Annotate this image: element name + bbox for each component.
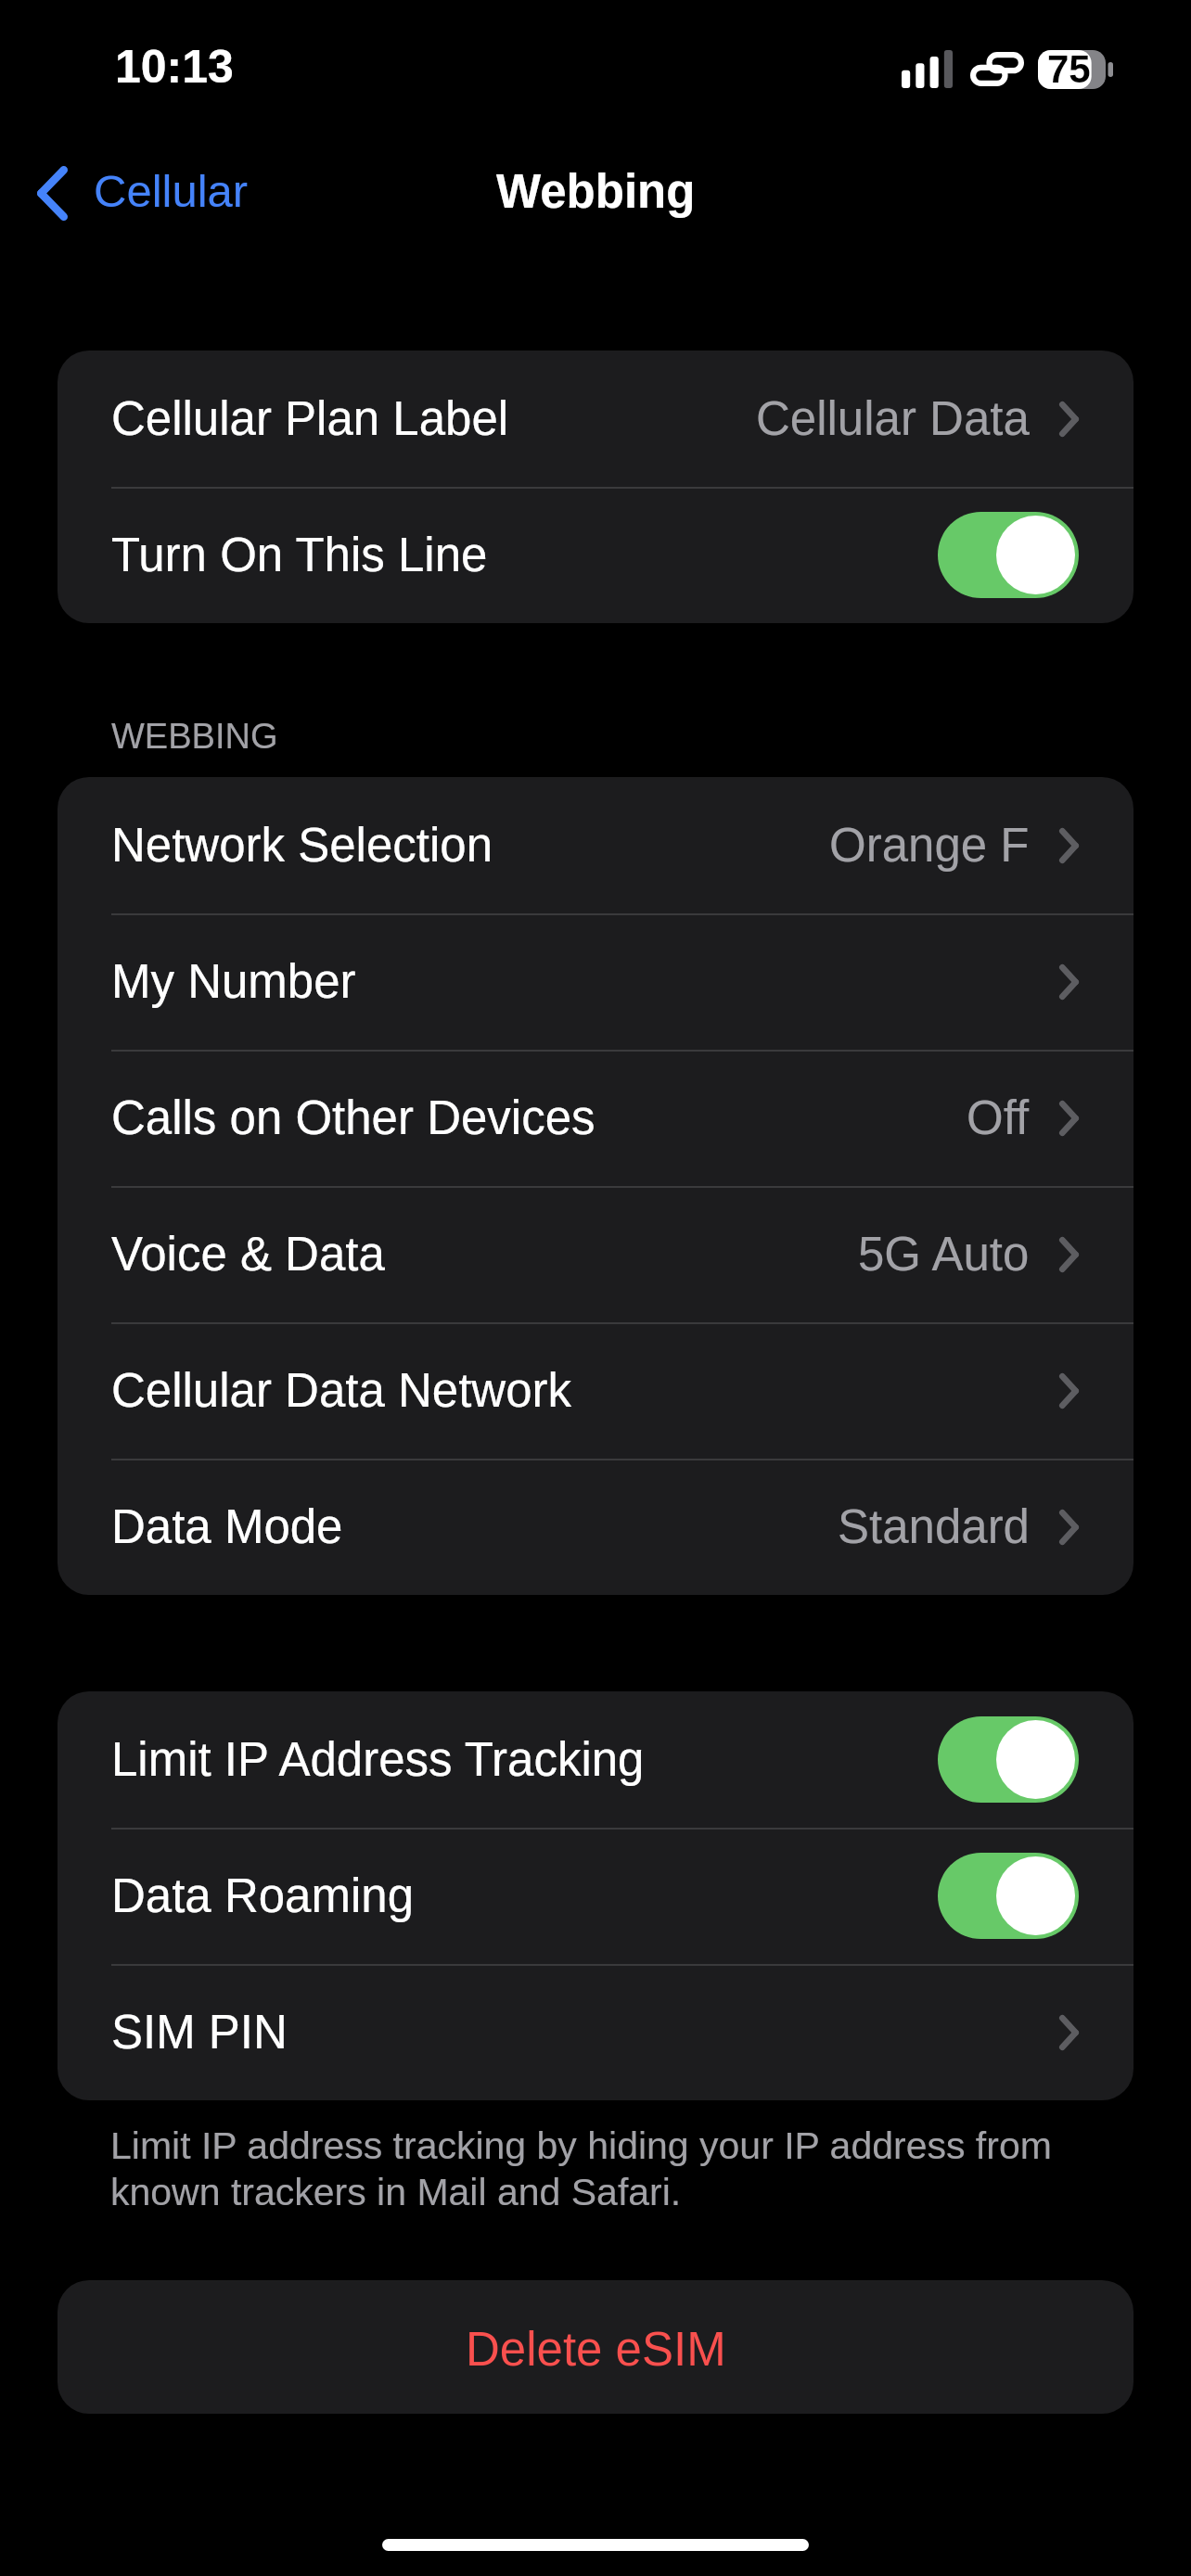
staticText: Data Mode [111, 1500, 343, 1553]
button[interactable]: Data Mode [58, 1459, 1133, 1595]
button[interactable]: Delete eSIM [58, 2280, 1133, 2414]
staticText: Delete eSIM [466, 2323, 726, 2376]
button[interactable]: Turn On This Line [938, 512, 1079, 598]
staticText: 5G Auto [858, 1228, 1030, 1281]
staticText: Cellular Data Network [111, 1364, 572, 1417]
button[interactable]: Limit IP Address Tracking [58, 1691, 1133, 1828]
button[interactable]: Turn On This Line [58, 487, 1133, 623]
button[interactable]: Network Selection [58, 777, 1133, 913]
button[interactable]: Data Roaming [938, 1853, 1079, 1939]
staticText: Cellular [94, 166, 249, 217]
staticText: Orange F [829, 819, 1030, 872]
button[interactable]: Voice & Data [58, 1186, 1133, 1322]
staticText: Cellular Plan Label [111, 392, 509, 445]
staticText: Voice & Data [111, 1228, 385, 1281]
staticText: Limit IP Address Tracking [111, 1733, 645, 1786]
staticText: Turn On This Line [111, 529, 488, 581]
button[interactable]: Cellular Plan Label [58, 351, 1133, 487]
staticText: Off [967, 1091, 1030, 1144]
staticText: WEBBING [111, 717, 278, 756]
button[interactable]: Limit IP Address Tracking [938, 1716, 1079, 1803]
staticText: 10:13 [115, 41, 234, 93]
button[interactable]: Cellular Data Network [58, 1322, 1133, 1459]
staticText: Webbing [496, 165, 696, 218]
button[interactable]: SIM PIN [58, 1964, 1133, 2100]
staticText: Network Selection [111, 819, 493, 872]
staticText: Standard [838, 1500, 1030, 1553]
staticText: Data Roaming [111, 1869, 414, 1922]
staticText: Limit IP address tracking by hiding your… [110, 2124, 1072, 2213]
button[interactable]: My Number [58, 913, 1133, 1050]
button[interactable]: Calls on Other Devices [58, 1050, 1133, 1186]
staticText: Cellular Data [756, 392, 1030, 445]
staticText: Calls on Other Devices [111, 1091, 595, 1144]
staticText: SIM PIN [111, 2006, 288, 2059]
button[interactable]: Back to Cellular [0, 160, 269, 226]
staticText: My Number [111, 955, 356, 1008]
button[interactable]: Data Roaming [58, 1828, 1133, 1964]
staticText: 75 [1047, 47, 1091, 91]
